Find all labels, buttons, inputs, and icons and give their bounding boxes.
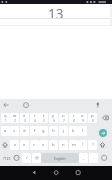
staticText: ! [82, 142, 84, 148]
button[interactable]: a [1, 126, 10, 136]
staticText: h [52, 128, 55, 134]
staticText: b [52, 142, 55, 148]
staticText: English [54, 156, 66, 161]
staticText: z [14, 142, 16, 148]
button[interactable]: m [69, 140, 78, 150]
staticText: ?123 [3, 156, 11, 161]
staticText: n [62, 142, 65, 148]
button[interactable] [24, 166, 46, 180]
button[interactable] [46, 166, 67, 180]
button[interactable]: ? [88, 140, 97, 150]
button[interactable]: English [41, 153, 79, 163]
staticText: g [42, 128, 45, 134]
staticText: o [81, 113, 84, 119]
staticText: 3 [24, 119, 26, 123]
button[interactable]: s [10, 126, 19, 136]
button[interactable]: ?123 [1, 153, 12, 163]
button[interactable]: 13 [0, 4, 112, 18]
button[interactable]: e [20, 113, 29, 123]
staticText: ? [92, 142, 94, 148]
button[interactable] [88, 126, 112, 136]
staticText: 4 [34, 119, 36, 123]
button[interactable]: q [1, 113, 10, 123]
button[interactable]: z [10, 140, 19, 150]
staticText: 6 [53, 119, 55, 123]
button[interactable]: r [30, 113, 39, 123]
staticText: y [52, 113, 55, 119]
staticText: q [4, 113, 7, 119]
staticText: 5 [43, 119, 45, 123]
button[interactable]: ! [78, 140, 87, 150]
staticText: 8 [73, 119, 75, 123]
staticText: j [63, 128, 65, 134]
button[interactable]: b [49, 140, 58, 150]
button[interactable]: t [39, 113, 48, 123]
button[interactable]: v [39, 140, 48, 150]
button[interactable]: p [88, 113, 97, 123]
button[interactable]: g [39, 126, 48, 136]
staticText: . [93, 155, 95, 161]
staticText: p [91, 113, 94, 119]
staticText: , [83, 155, 85, 161]
button[interactable]: u [59, 113, 68, 123]
staticText: v [42, 142, 45, 148]
button[interactable]: c [30, 140, 39, 150]
button[interactable]: x [20, 140, 29, 150]
staticText: 0 [92, 119, 94, 123]
button[interactable]: n [59, 140, 68, 150]
button[interactable]: l [78, 126, 87, 136]
staticText: a [4, 128, 7, 134]
button[interactable]: i [69, 113, 78, 123]
button[interactable]: w [10, 113, 19, 123]
staticText: i [73, 113, 75, 119]
staticText: f [34, 128, 36, 134]
staticText: c [33, 142, 36, 148]
staticText: u [62, 113, 65, 119]
staticText: t [43, 113, 45, 119]
staticText: @ [35, 155, 39, 161]
button[interactable]: k [69, 126, 78, 136]
button[interactable]: j [59, 126, 68, 136]
staticText: 1 [5, 119, 7, 123]
button[interactable] [12, 153, 21, 163]
button[interactable]: o [78, 113, 87, 123]
staticText: k [72, 128, 75, 134]
button[interactable]: @ [32, 153, 41, 163]
button[interactable]: h [49, 126, 58, 136]
staticText: / [26, 155, 28, 161]
staticText: 9 [82, 119, 84, 123]
staticText: 13 [48, 5, 64, 18]
staticText: d [23, 128, 26, 134]
button[interactable]: . [89, 153, 98, 163]
staticText: l [82, 128, 84, 134]
button[interactable] [98, 113, 112, 123]
staticText: x [23, 142, 26, 148]
button[interactable]: , [79, 153, 88, 163]
staticText: 2 [14, 119, 16, 123]
staticText: 7 [63, 119, 65, 123]
button[interactable] [67, 166, 88, 180]
staticText: w [13, 113, 17, 119]
button[interactable]: d [20, 126, 29, 136]
button[interactable]: f [30, 126, 39, 136]
staticText: r [34, 113, 36, 119]
button[interactable]: / [22, 153, 31, 163]
staticText: m [72, 142, 76, 148]
staticText: e [23, 113, 26, 119]
staticText: s [13, 128, 16, 134]
button[interactable]: y [49, 113, 58, 123]
